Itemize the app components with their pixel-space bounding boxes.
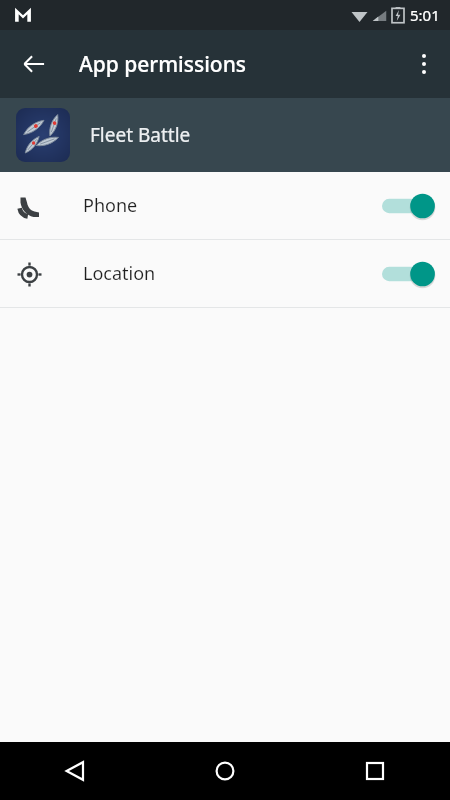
- button[interactable]: Location: [0, 240, 450, 307]
- staticText: Location: [83, 261, 156, 286]
- button[interactable]: Toggle permission: [382, 190, 434, 222]
- button[interactable]: Fleet Battle: [0, 98, 450, 172]
- button[interactable]: Home: [150, 742, 300, 800]
- staticText: App permissions: [79, 50, 247, 79]
- staticText: Fleet Battle: [90, 122, 191, 148]
- button[interactable]: Back: [10, 40, 58, 88]
- staticText: 5:01: [410, 5, 440, 25]
- button[interactable]: Back: [0, 742, 150, 800]
- button[interactable]: More options: [400, 40, 448, 88]
- button[interactable]: Phone: [0, 172, 450, 239]
- button[interactable]: Toggle permission: [382, 258, 434, 290]
- button[interactable]: Recent apps: [300, 742, 450, 800]
- staticText: Phone: [83, 193, 138, 218]
